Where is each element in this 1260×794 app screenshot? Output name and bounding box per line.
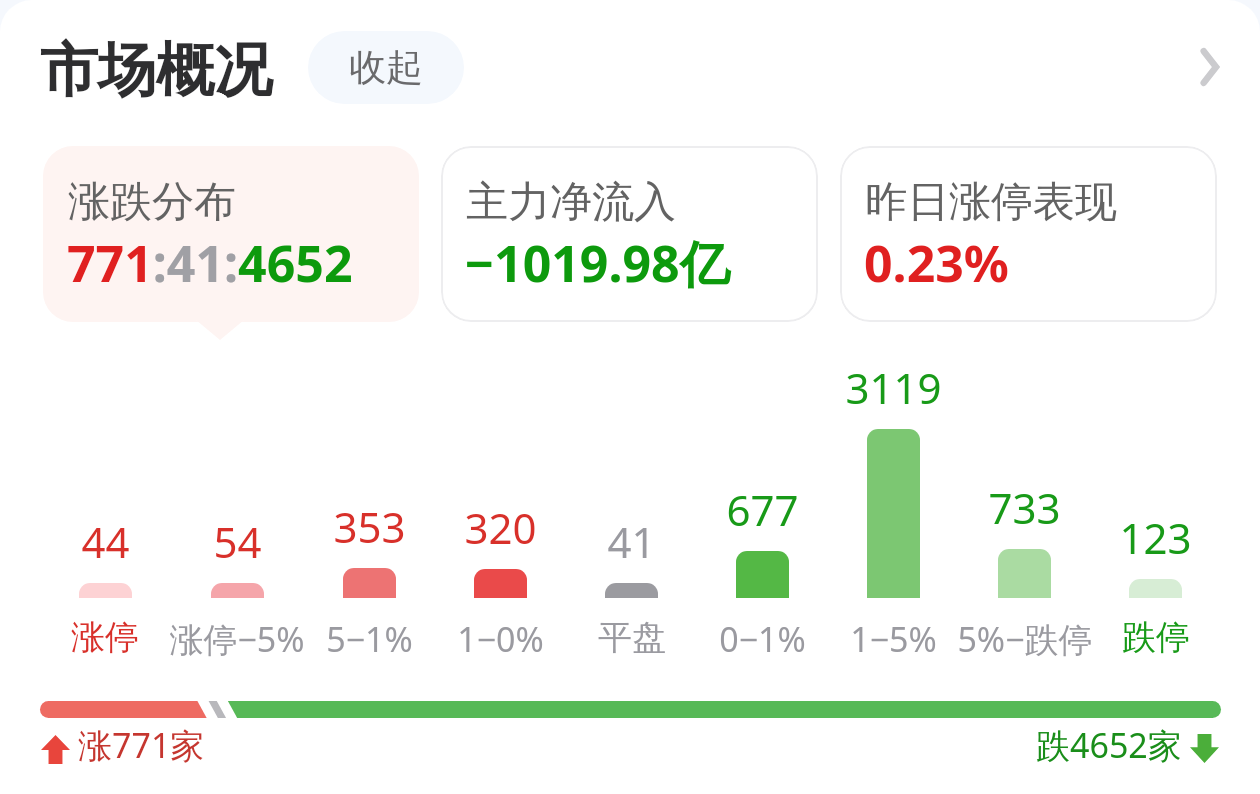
staticText: 涨771家 bbox=[78, 722, 205, 768]
staticText: 涨停−5% bbox=[169, 616, 305, 662]
staticText: 跌4652家 bbox=[1036, 722, 1182, 768]
staticText: 收起 bbox=[349, 44, 423, 91]
button[interactable]: 涨跌分布 bbox=[43, 146, 419, 322]
staticText: 123 bbox=[1119, 509, 1192, 566]
button[interactable]: 收起 bbox=[308, 31, 464, 104]
staticText: 涨跌分布 bbox=[68, 176, 236, 229]
staticText: 5%−跌停 bbox=[957, 616, 1093, 662]
staticText: 主力净流入 bbox=[466, 176, 676, 229]
staticText: 0−1% bbox=[719, 616, 806, 662]
staticText: 涨停 bbox=[71, 616, 139, 659]
staticText: 3119 bbox=[845, 359, 942, 416]
staticText: 353 bbox=[333, 498, 406, 555]
staticText: 市场概况 bbox=[40, 34, 272, 107]
staticText: 44 bbox=[81, 513, 130, 570]
staticText: 平盘 bbox=[598, 616, 666, 659]
button[interactable]: 昨日涨停表现 bbox=[840, 146, 1217, 322]
staticText: 昨日涨停表现 bbox=[865, 176, 1117, 229]
staticText: 1−5% bbox=[850, 616, 937, 662]
staticText: 320 bbox=[464, 499, 537, 556]
staticText: 0.23% bbox=[864, 229, 1009, 297]
staticText: 跌停 bbox=[1122, 616, 1190, 659]
button[interactable]: 查看更多 bbox=[1179, 37, 1239, 97]
staticText: 771:41:4652 bbox=[67, 229, 353, 297]
staticText: 5−1% bbox=[326, 616, 413, 662]
staticText: −1019.98亿 bbox=[465, 229, 730, 297]
staticText: 733 bbox=[988, 479, 1061, 536]
staticText: 54 bbox=[213, 513, 262, 570]
staticText: 677 bbox=[726, 481, 799, 538]
staticText: 1−0% bbox=[457, 616, 544, 662]
button[interactable]: 主力净流入 bbox=[441, 146, 818, 322]
staticText: 41 bbox=[607, 513, 656, 570]
